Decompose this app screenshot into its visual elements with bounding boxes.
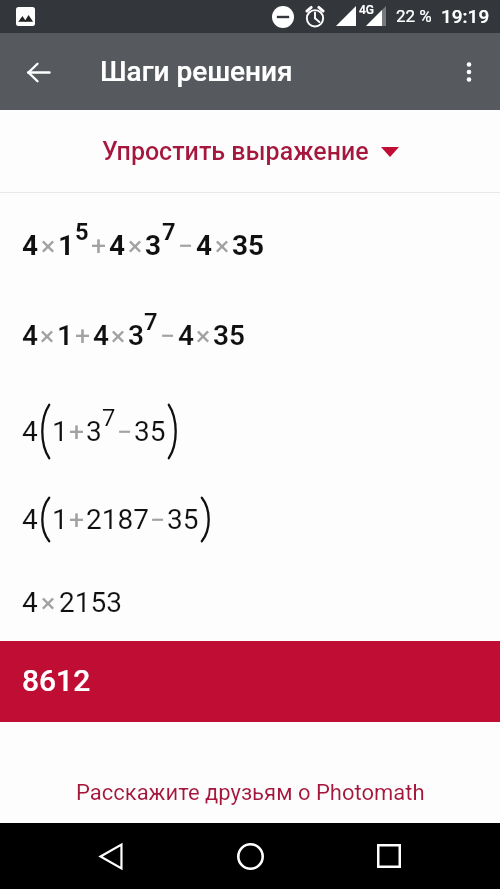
staticText: × <box>196 320 211 351</box>
staticText: 4G <box>359 3 374 17</box>
staticText: 35 <box>213 319 245 352</box>
staticText: 22 % <box>396 6 432 26</box>
staticText: 4 <box>22 586 38 619</box>
button[interactable]: Back <box>14 48 62 96</box>
staticText: 3 <box>128 319 144 352</box>
staticText: − <box>178 230 194 261</box>
staticText: × <box>128 230 143 261</box>
staticText: 7 <box>162 218 176 246</box>
staticText: 4 <box>196 229 213 262</box>
staticText: 4 <box>22 229 39 262</box>
staticText: 1 <box>57 319 73 352</box>
button[interactable]: 4 <box>0 295 500 375</box>
staticText: 4 <box>22 503 38 536</box>
staticText: + <box>69 416 85 447</box>
staticText: − <box>117 416 133 447</box>
button[interactable]: 4 <box>0 562 500 642</box>
staticText: 1 <box>52 415 68 448</box>
staticText: 4 <box>178 319 194 352</box>
staticText: 2153 <box>59 586 122 619</box>
button[interactable]: 4 <box>0 479 500 559</box>
staticText: + <box>91 230 107 261</box>
staticText: − <box>150 504 166 535</box>
button[interactable]: Расскажите друзьям о Photomath <box>0 722 500 823</box>
staticText: 19:19 <box>441 5 490 27</box>
button[interactable]: 4 <box>0 205 500 285</box>
staticText: 2187 <box>86 503 149 536</box>
button[interactable]: Back <box>89 834 133 878</box>
staticText: 4 <box>22 415 38 448</box>
staticText: 4 <box>109 229 126 262</box>
staticText: × <box>215 230 230 261</box>
staticText: + <box>69 504 85 535</box>
staticText: 7 <box>102 404 116 432</box>
staticText: 3 <box>145 229 162 262</box>
staticText: 7 <box>144 308 158 336</box>
button[interactable]: 8612 <box>0 641 500 722</box>
staticText: − <box>160 320 176 351</box>
staticText: × <box>111 320 126 351</box>
staticText: 5 <box>75 218 89 246</box>
staticText: Расскажите друзьям о Photomath <box>76 780 425 806</box>
staticText: × <box>41 587 56 618</box>
button[interactable]: More options <box>445 48 493 96</box>
staticText: 1 <box>52 503 68 536</box>
button[interactable]: Упростить выражение <box>0 110 500 192</box>
button[interactable]: Home <box>228 834 272 878</box>
staticText: 35 <box>134 415 166 448</box>
staticText: Упростить выражение <box>102 137 369 166</box>
staticText: 1 <box>58 229 75 262</box>
staticText: 35 <box>232 229 265 262</box>
staticText: 4 <box>22 319 38 352</box>
staticText: 3 <box>86 415 102 448</box>
staticText: 35 <box>167 503 199 536</box>
staticText: Шаги решения <box>100 55 293 88</box>
staticText: 4 <box>93 319 109 352</box>
button[interactable]: Recent apps <box>367 834 411 878</box>
staticText: + <box>75 320 91 351</box>
staticText: 8612 <box>22 663 91 698</box>
staticText: × <box>41 230 56 261</box>
button[interactable]: 4 <box>0 391 500 471</box>
staticText: × <box>40 320 55 351</box>
